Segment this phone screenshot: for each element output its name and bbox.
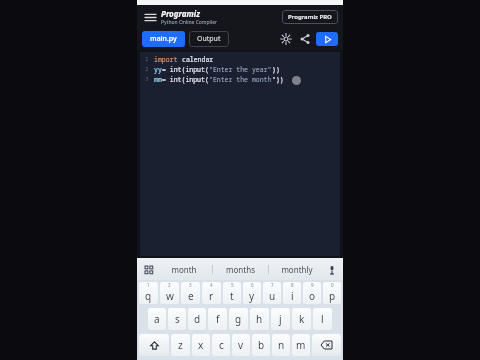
staticText: calendar — [182, 55, 214, 64]
staticText: v — [238, 338, 244, 352]
staticText: 1 — [145, 55, 149, 63]
staticText: 3 — [189, 282, 192, 288]
button[interactable]: x — [192, 334, 210, 356]
staticText: w — [166, 289, 174, 303]
button[interactable]: 1 — [139, 282, 158, 304]
staticText: month — [171, 264, 197, 275]
staticText: mm — [154, 75, 162, 84]
staticText: "Enter the year" — [209, 65, 272, 74]
button[interactable]: Run — [316, 32, 338, 46]
button[interactable]: Menu — [142, 9, 158, 25]
staticText: r — [209, 289, 214, 303]
button[interactable]: v — [232, 334, 250, 356]
staticText: "Enter the month — [209, 75, 272, 84]
button[interactable]: month — [156, 258, 212, 280]
button[interactable]: g — [229, 308, 248, 330]
button[interactable]: Backspace — [312, 334, 341, 356]
button[interactable]: 3 — [181, 282, 200, 304]
staticText: t — [230, 289, 234, 303]
staticText: 6 — [251, 282, 254, 288]
button[interactable]: b — [252, 334, 270, 356]
button[interactable]: 2 — [160, 282, 179, 304]
button[interactable]: monthly — [269, 258, 324, 280]
staticText: 0 — [331, 282, 334, 288]
button[interactable]: n — [272, 334, 290, 356]
staticText: months — [226, 264, 255, 275]
button[interactable]: d — [188, 308, 206, 330]
staticText: Output — [197, 34, 221, 44]
staticText: 2 — [168, 282, 171, 288]
button[interactable]: 0 — [323, 282, 341, 304]
button[interactable]: f — [208, 308, 227, 330]
staticText: 3 — [145, 75, 149, 83]
staticText: j — [279, 312, 282, 326]
staticText: i — [291, 289, 294, 303]
staticText: 5 — [231, 282, 234, 288]
staticText: k — [299, 312, 305, 326]
staticText: b — [258, 338, 265, 352]
button[interactable]: h — [250, 308, 269, 330]
staticText: e — [188, 289, 194, 303]
staticText: p — [329, 289, 336, 303]
button[interactable]: 8 — [283, 282, 301, 304]
staticText: 1 — [147, 282, 150, 288]
staticText: )) — [272, 65, 280, 74]
staticText: h — [256, 312, 263, 326]
staticText: g — [235, 312, 242, 326]
staticText: d — [194, 312, 201, 326]
button[interactable]: main.py — [142, 31, 185, 47]
button[interactable]: z — [171, 334, 190, 356]
staticText: main.py — [150, 34, 177, 44]
staticText: monthly — [281, 264, 313, 275]
staticText: ")) — [272, 75, 284, 84]
staticText: 8 — [291, 282, 294, 288]
button[interactable]: c — [212, 334, 230, 356]
button[interactable]: Shift — [139, 334, 169, 356]
staticText: s — [175, 312, 180, 326]
button[interactable]: 5 — [223, 282, 241, 304]
button[interactable]: Output — [189, 31, 229, 47]
staticText: y — [249, 289, 255, 303]
staticText: Programiz PRO — [288, 13, 332, 21]
button[interactable]: 7 — [263, 282, 281, 304]
staticText: 2 — [145, 65, 149, 73]
staticText: m — [296, 338, 306, 352]
button[interactable]: Keyboard options — [141, 262, 156, 277]
staticText: 4 — [210, 282, 213, 288]
staticText: u — [269, 289, 276, 303]
button[interactable]: months — [213, 258, 268, 280]
button[interactable]: l — [313, 308, 332, 330]
button[interactable]: j — [271, 308, 290, 330]
staticText: c — [219, 338, 224, 352]
staticText: Python Online Compiler — [161, 19, 218, 26]
staticText: 7 — [271, 282, 274, 288]
staticText: o — [309, 289, 316, 303]
staticText: q — [145, 289, 152, 303]
staticText: x — [198, 338, 204, 352]
button[interactable]: 4 — [202, 282, 221, 304]
staticText: = int(input( — [162, 75, 209, 84]
button[interactable]: k — [292, 308, 311, 330]
staticText: l — [321, 312, 324, 326]
staticText: yy — [154, 65, 162, 74]
staticText: a — [154, 312, 160, 326]
button[interactable]: Voice input — [324, 262, 339, 277]
button[interactable]: Share — [297, 31, 313, 47]
button[interactable]: Programiz PRO — [282, 10, 338, 24]
staticText: f — [216, 312, 220, 326]
staticText: 9 — [311, 282, 314, 288]
button[interactable]: Toggle theme — [278, 31, 294, 47]
staticText: z — [178, 338, 183, 352]
button[interactable]: 6 — [243, 282, 261, 304]
staticText: import — [154, 55, 182, 64]
button[interactable]: m — [292, 334, 310, 356]
button[interactable]: a — [148, 308, 166, 330]
button[interactable]: 9 — [303, 282, 321, 304]
staticText: Programiz — [161, 8, 200, 19]
staticText: = int(input( — [162, 65, 209, 74]
staticText: n — [278, 338, 285, 352]
button[interactable]: s — [168, 308, 186, 330]
